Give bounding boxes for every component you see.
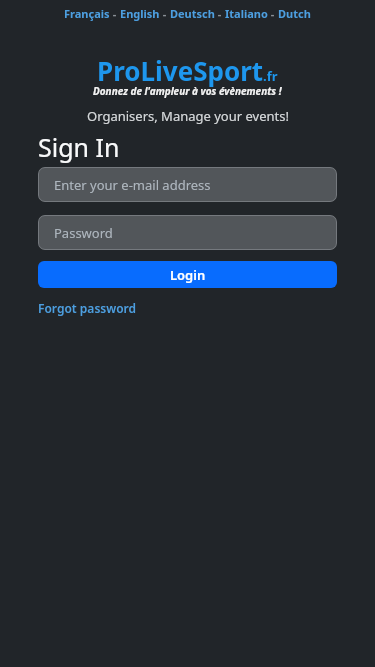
button[interactable]: Français (64, 6, 110, 21)
staticText: Forgot password (38, 300, 137, 316)
staticText: Enter your e-mail address (54, 176, 211, 194)
button[interactable]: Password (38, 215, 337, 250)
staticText: Deutsch (170, 6, 215, 21)
button[interactable]: Dutch (278, 6, 311, 21)
staticText: ProLiveSport.fr (97, 53, 278, 88)
staticText: Français (64, 6, 110, 21)
staticText: Italiano (225, 6, 268, 21)
button[interactable]: Deutsch (170, 6, 215, 21)
button[interactable]: Enter your e-mail address (38, 167, 337, 202)
button[interactable]: Forgot password (38, 300, 137, 316)
button[interactable]: English (120, 6, 160, 21)
button[interactable]: Login (38, 261, 337, 288)
staticText: Password (54, 224, 113, 242)
staticText: Donnez de l'ampleur à vos évènements ! (93, 84, 282, 98)
staticText: Login (170, 266, 206, 284)
button[interactable]: Italiano (225, 6, 268, 21)
staticText: Organisers, Manage your events! (87, 107, 289, 125)
staticText: - (215, 6, 225, 21)
staticText: Sign In (38, 130, 120, 164)
staticText: Dutch (278, 6, 311, 21)
staticText: - (110, 6, 120, 21)
staticText: - (160, 6, 170, 21)
staticText: - (268, 6, 278, 21)
staticText: English (120, 6, 160, 21)
